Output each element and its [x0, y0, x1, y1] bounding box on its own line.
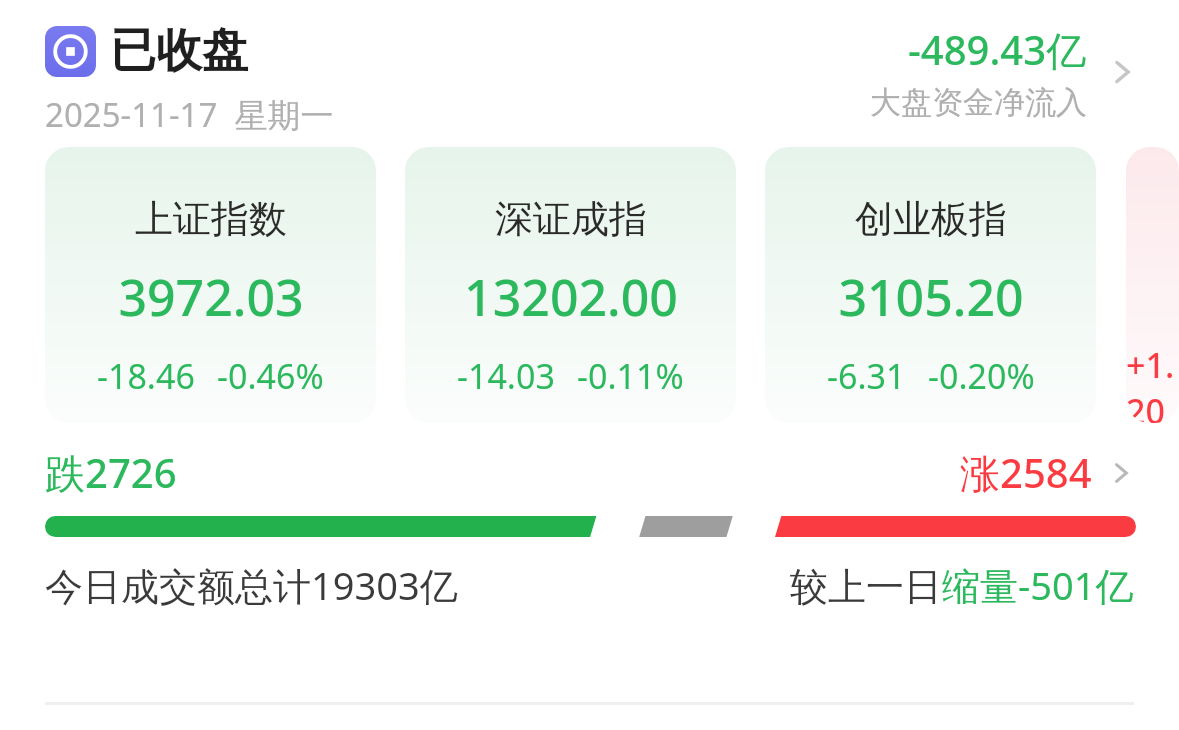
button[interactable]: 跌2726	[0, 445, 1179, 537]
staticText: -14.03	[457, 353, 555, 399]
staticText: 跌2726	[45, 445, 177, 500]
staticText: 13202.00	[464, 263, 678, 331]
staticText: -489.43亿	[908, 22, 1087, 77]
staticText: 上证指数	[135, 195, 287, 243]
staticText: 深证成指	[495, 195, 647, 243]
staticText: -0.11%	[577, 353, 684, 399]
staticText: -6.31	[827, 353, 906, 399]
button[interactable]: +1.20%	[1126, 147, 1179, 423]
staticText: -18.46	[97, 353, 195, 399]
staticText: -0.46%	[217, 353, 324, 399]
button[interactable]: 上证指数	[45, 147, 376, 423]
button[interactable]: -489.43亿	[870, 22, 1139, 122]
button[interactable]: 创业板指	[765, 147, 1096, 423]
staticText: 2025-11-17 星期一	[45, 92, 334, 137]
staticText: 较上一日缩量-501亿	[790, 559, 1134, 611]
staticText: 已收盘	[110, 22, 248, 80]
other: 查看大盘资金详情	[1105, 55, 1139, 89]
staticText: 3972.03	[118, 263, 304, 331]
staticText: +1.20%	[1126, 342, 1179, 423]
staticText: 大盘资金净流入	[870, 83, 1087, 122]
button[interactable]: 深证成指	[405, 147, 736, 423]
staticText: 涨2584	[960, 445, 1092, 500]
staticText: 今日成交额总计19303亿	[45, 559, 458, 611]
staticText: 3105.20	[838, 263, 1024, 331]
staticText: -0.20%	[928, 353, 1035, 399]
staticText: 创业板指	[855, 195, 1007, 243]
